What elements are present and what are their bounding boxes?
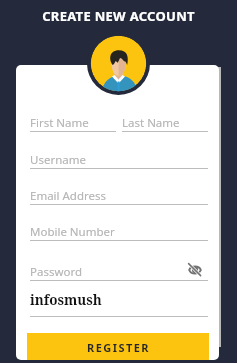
staticText: Mobile Number <box>30 224 115 240</box>
button[interactable]: REGISTER <box>27 333 209 360</box>
staticText: Username <box>30 152 86 168</box>
button[interactable]: Mobile Number <box>30 220 208 241</box>
button[interactable]: Show password <box>187 262 203 278</box>
staticText: infosmush <box>30 291 102 309</box>
button[interactable]: First Name <box>30 111 116 132</box>
staticText: CREATE NEW ACCOUNT <box>0 7 237 25</box>
staticText: Last Name <box>122 115 180 131</box>
staticText: Password <box>30 264 83 280</box>
staticText: Email Address <box>30 188 107 204</box>
button[interactable]: infosmush <box>30 290 208 317</box>
button[interactable]: Profile photo <box>87 32 150 95</box>
button[interactable]: Last Name <box>122 111 208 132</box>
staticText: First Name <box>30 115 89 131</box>
button[interactable]: Username <box>30 148 208 169</box>
staticText: REGISTER <box>87 340 151 355</box>
button[interactable]: Password <box>30 260 208 281</box>
button[interactable]: Email Address <box>30 184 208 205</box>
